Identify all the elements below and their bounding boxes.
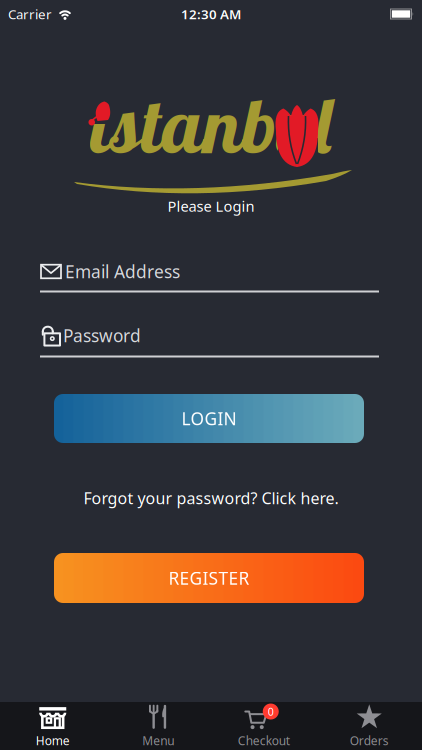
- button[interactable]: Menu: [105, 702, 211, 750]
- button[interactable]: Orders: [316, 702, 422, 750]
- staticText: REGISTER: [168, 566, 249, 589]
- button[interactable]: Password: [40, 325, 379, 356]
- staticText: 12:30 AM: [181, 5, 241, 23]
- staticText: 0: [268, 704, 274, 719]
- staticText: Home: [36, 732, 70, 748]
- button[interactable]: Home: [0, 702, 105, 750]
- staticText: LOGIN: [181, 407, 236, 430]
- staticText: Please Login: [167, 196, 254, 216]
- staticText: Menu: [142, 732, 174, 748]
- staticText: istanbul: [90, 76, 331, 173]
- staticText: Password: [63, 324, 141, 347]
- staticText: Orders: [350, 732, 389, 748]
- staticText: Checkout: [238, 732, 290, 748]
- staticText: Carrier: [8, 5, 52, 23]
- button[interactable]: Forgot your password? Click here.: [0, 488, 422, 508]
- button[interactable]: REGISTER: [54, 553, 364, 603]
- button[interactable]: 0: [211, 702, 316, 750]
- button[interactable]: Email Address: [40, 261, 379, 291]
- staticText: Email Address: [65, 260, 180, 283]
- button[interactable]: LOGIN: [54, 394, 364, 443]
- staticText: Forgot your password? Click here.: [83, 487, 338, 509]
